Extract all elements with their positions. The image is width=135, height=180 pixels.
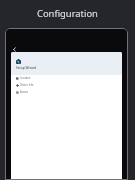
button[interactable]: Back (10, 45, 18, 53)
staticText: Access (20, 90, 29, 94)
staticText: Setup Wizard (16, 66, 37, 70)
staticText: Device info (20, 83, 34, 87)
staticText: Location (20, 76, 31, 80)
staticText: Configuration (37, 7, 98, 20)
button[interactable]: Location (16, 76, 122, 80)
button[interactable]: Access (16, 90, 122, 94)
button[interactable]: Device info (16, 83, 122, 87)
